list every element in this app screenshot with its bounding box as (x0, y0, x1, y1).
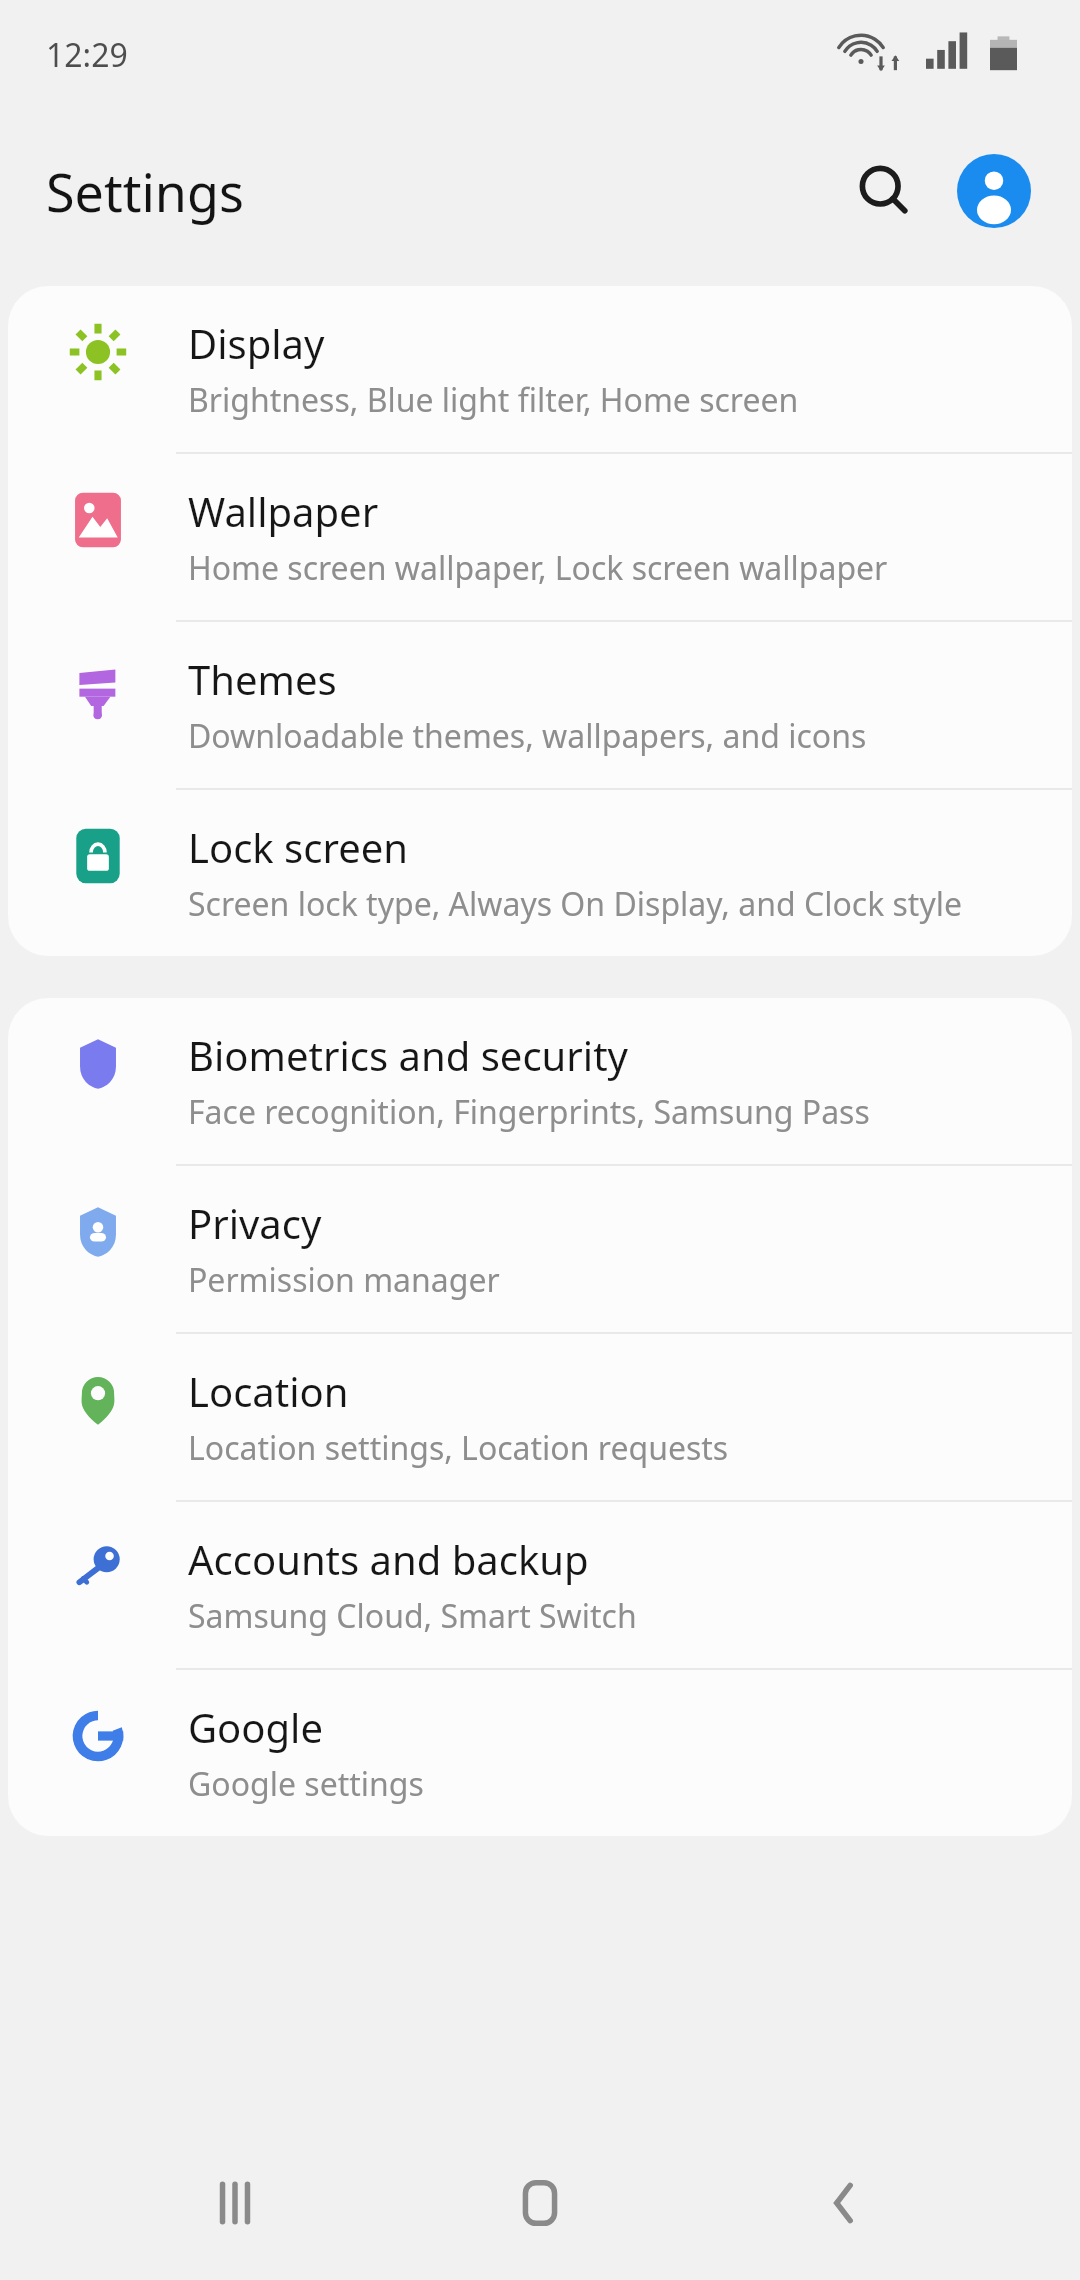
staticText: Wallpaper (188, 484, 379, 538)
button[interactable]: Back (775, 2133, 915, 2273)
staticText: Google (188, 1700, 323, 1754)
button[interactable]: Privacy (8, 1166, 1072, 1334)
staticText: Privacy (188, 1196, 322, 1250)
button[interactable]: Account (946, 143, 1042, 239)
staticText: Settings (46, 156, 244, 227)
button[interactable]: Google (8, 1670, 1072, 1836)
staticText: Brightness, Blue light filter, Home scre… (188, 378, 799, 422)
staticText: Screen lock type, Always On Display, and… (188, 882, 963, 926)
staticText: Samsung Cloud, Smart Switch (188, 1594, 637, 1638)
staticText: Downloadable themes, wallpapers, and ico… (188, 714, 867, 758)
button[interactable]: Biometrics and security (8, 998, 1072, 1166)
staticText: Lock screen (188, 820, 409, 874)
staticText: Location settings, Location requests (188, 1426, 729, 1470)
staticText: 12:29 (46, 33, 128, 77)
staticText: Permission manager (188, 1258, 500, 1302)
button[interactable]: Lock screen (8, 790, 1072, 956)
button[interactable]: Recent apps (165, 2133, 305, 2273)
staticText: Google settings (188, 1762, 424, 1806)
staticText: Accounts and backup (188, 1532, 589, 1586)
button[interactable]: Themes (8, 622, 1072, 790)
staticText: Biometrics and security (188, 1028, 628, 1082)
staticText: Face recognition, Fingerprints, Samsung … (188, 1090, 870, 1134)
staticText: Themes (188, 652, 337, 706)
staticText: Display (188, 316, 325, 370)
button[interactable]: Search (836, 143, 932, 239)
staticText: Location (188, 1364, 349, 1418)
button[interactable]: Location (8, 1334, 1072, 1502)
button[interactable]: Accounts and backup (8, 1502, 1072, 1670)
button[interactable]: Wallpaper (8, 454, 1072, 622)
staticText: Home screen wallpaper, Lock screen wallp… (188, 546, 888, 590)
button[interactable]: Home (470, 2133, 610, 2273)
button[interactable]: Display (8, 286, 1072, 454)
